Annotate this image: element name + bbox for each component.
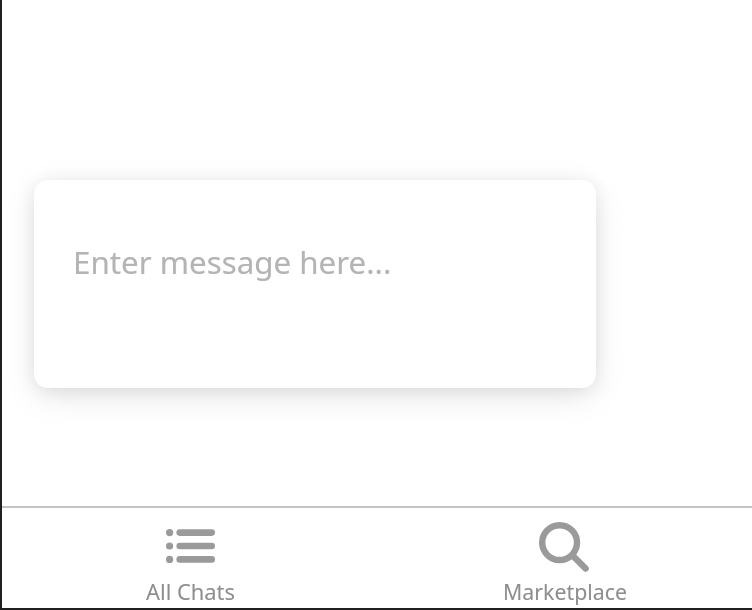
button[interactable]: Enter message here...	[34, 180, 596, 388]
staticText: Enter message here...	[73, 241, 392, 284]
button[interactable]: All Chats	[0, 508, 376, 608]
button[interactable]: Marketplace	[376, 508, 752, 608]
other: Marketplace	[539, 522, 589, 572]
staticText: All Chats	[146, 577, 236, 607]
other: All Chats	[166, 529, 215, 563]
staticText: Marketplace	[503, 577, 627, 606]
